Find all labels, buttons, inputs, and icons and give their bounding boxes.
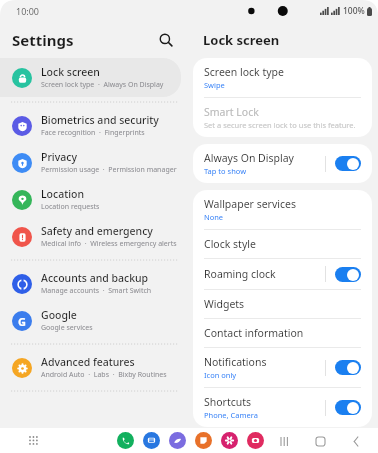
button[interactable]: Contact information (193, 319, 372, 347)
button[interactable]: Biometrics and security (0, 107, 189, 144)
staticText: Swipe (204, 80, 225, 90)
button[interactable]: Lock screen (0, 58, 181, 97)
staticText: Widgets (204, 297, 245, 311)
button[interactable]: Screen lock type (193, 58, 372, 97)
staticText: Lock screen (41, 65, 100, 79)
button[interactable]: camera (247, 432, 264, 449)
staticText: Google (41, 308, 77, 322)
staticText: Roaming clock (204, 267, 276, 281)
staticText: Clock style (204, 237, 256, 251)
staticText: Face recognition · Fingerprints (41, 128, 145, 138)
staticText: Always On Display (204, 151, 294, 165)
button[interactable]: Widgets (193, 290, 372, 318)
staticText: Screen lock type (204, 65, 284, 79)
staticText: Advanced features (41, 355, 135, 369)
button[interactable]: store (221, 432, 238, 449)
button[interactable]: notes (195, 432, 212, 449)
button[interactable]: Recents (276, 433, 292, 449)
button[interactable]: Back (348, 433, 364, 449)
button[interactable]: Apps (26, 433, 42, 449)
button[interactable]: Privacy (0, 144, 189, 181)
button[interactable]: Notifications (193, 348, 372, 387)
staticText: Location (41, 187, 85, 201)
button[interactable]: Accounts and backup (0, 265, 189, 302)
staticText: Accounts and backup (41, 271, 149, 285)
staticText: Location requests (41, 202, 100, 212)
staticText: Permission usage · Permission manager (41, 165, 177, 175)
button[interactable]: Search (155, 29, 177, 51)
button[interactable]: Notifications toggle (335, 360, 361, 375)
button[interactable]: Roaming clock (193, 259, 372, 289)
staticText: Biometrics and security (41, 113, 159, 127)
staticText: Set a secure screen lock to use this fea… (204, 120, 356, 130)
staticText: Manage accounts · Smart Switch (41, 286, 152, 296)
button[interactable]: Smart Lock (193, 98, 372, 137)
staticText: Wallpaper services (204, 197, 296, 211)
staticText: Notifications (204, 355, 267, 369)
staticText: Screen lock type · Always On Display (41, 80, 164, 90)
staticText: Medical info · Wireless emergency alerts (41, 239, 177, 249)
staticText: Google services (41, 323, 93, 333)
staticText: Icon only (204, 370, 237, 380)
button[interactable]: Safety and emergency (0, 218, 189, 255)
staticText: Safety and emergency (41, 224, 153, 238)
staticText: Smart Lock (204, 105, 259, 119)
staticText: Contact information (204, 326, 304, 340)
staticText: Android Auto · Labs · Bixby Routines (41, 370, 167, 380)
button[interactable]: Wallpaper services (193, 190, 372, 229)
button[interactable]: Shortcuts toggle (335, 400, 361, 415)
button[interactable]: internet (169, 432, 186, 449)
staticText: None (204, 212, 224, 222)
button[interactable]: Roaming clock toggle (335, 267, 361, 282)
staticText: Shortcuts (204, 395, 252, 409)
staticText: 10:00 (16, 5, 40, 17)
button[interactable]: Advanced features (0, 349, 189, 386)
staticText: Phone, Camera (204, 410, 258, 420)
staticText: Settings (12, 30, 74, 50)
button[interactable]: G (0, 302, 189, 339)
button[interactable]: Location (0, 181, 189, 218)
staticText: G (18, 314, 26, 329)
button[interactable]: phone (117, 432, 134, 449)
button[interactable]: Clock style (193, 230, 372, 258)
button[interactable]: Always On Display (193, 144, 372, 183)
button[interactable]: msg (143, 432, 160, 449)
staticText: Lock screen (203, 31, 280, 49)
button[interactable]: Shortcuts (193, 388, 372, 427)
staticText: Privacy (41, 150, 77, 164)
staticText: Tap to show (204, 166, 247, 176)
button[interactable]: Home (312, 433, 328, 449)
button[interactable]: Always On Display toggle (335, 156, 361, 171)
staticText: 100% (343, 5, 365, 17)
